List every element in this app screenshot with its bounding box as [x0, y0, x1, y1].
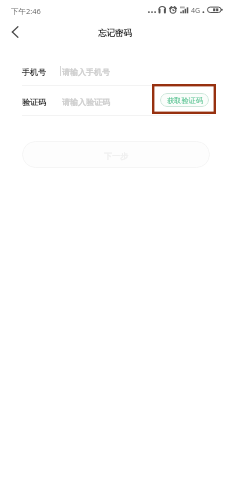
- staticText: 下一步: [104, 151, 128, 161]
- button[interactable]: 验证码: [0, 90, 231, 114]
- staticText: 4G: [191, 6, 201, 16]
- staticText: 忘记密码: [98, 28, 132, 39]
- button[interactable]: Back: [3, 20, 27, 44]
- staticText: 获取验证码: [167, 96, 203, 105]
- button[interactable]: 获取验证码: [160, 93, 209, 107]
- button[interactable]: 手机号: [0, 60, 231, 85]
- staticText: 下午2:46: [11, 6, 41, 16]
- staticText: 请输入手机号: [62, 67, 110, 77]
- staticText: 请输入验证码: [62, 97, 110, 107]
- staticText: 手机号: [22, 67, 46, 77]
- staticText: 验证码: [22, 97, 46, 107]
